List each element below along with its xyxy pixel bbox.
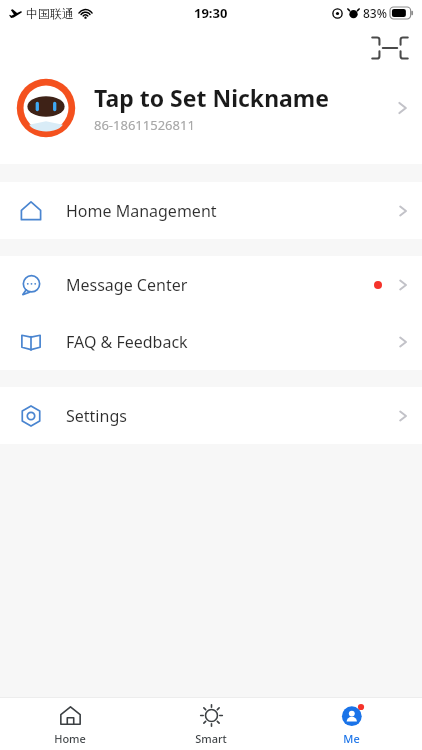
staticText: Settings xyxy=(66,405,398,427)
staticText: 86-18611526811 xyxy=(94,116,195,134)
button[interactable]: Home Management xyxy=(0,182,422,239)
staticText: Tap to Set Nickname xyxy=(94,82,330,113)
button[interactable]: Settings xyxy=(0,387,422,444)
staticText: Me xyxy=(343,731,360,746)
staticText: 83% xyxy=(363,5,387,21)
staticText: Home xyxy=(54,731,86,746)
staticText: FAQ & Feedback xyxy=(66,331,398,353)
button[interactable]: Scan QR code xyxy=(370,28,410,68)
staticText: 中国联通 xyxy=(26,6,74,21)
button[interactable]: FAQ & Feedback xyxy=(0,313,422,370)
button[interactable]: Me xyxy=(281,698,422,750)
button[interactable]: Smart xyxy=(140,698,281,750)
button[interactable]: Tap to Set Nickname xyxy=(0,70,422,146)
staticText: 19:30 xyxy=(194,4,228,22)
staticText: Home Management xyxy=(66,200,398,222)
staticText: Smart xyxy=(195,731,227,746)
button[interactable]: Message Center xyxy=(0,256,422,313)
staticText: Message Center xyxy=(66,274,374,296)
button[interactable]: Home xyxy=(0,698,140,750)
